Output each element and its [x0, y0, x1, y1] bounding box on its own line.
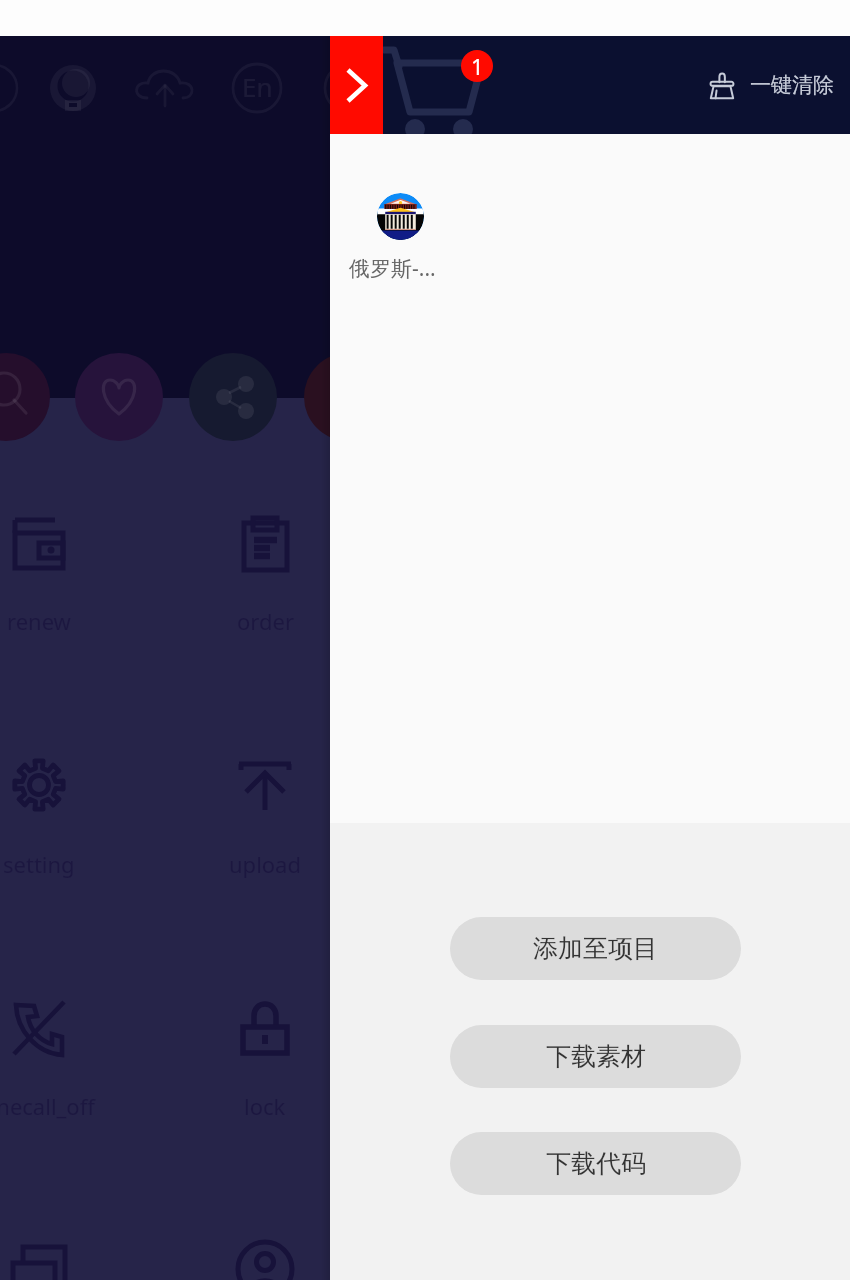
staticText: setting	[3, 849, 75, 879]
staticText: lock	[244, 1091, 286, 1121]
staticText: 俄罗斯-...	[349, 254, 436, 283]
staticText: 1	[471, 51, 484, 81]
staticText: 一键清除	[750, 72, 834, 98]
staticText: upload	[229, 849, 301, 879]
button[interactable]: 添加至项目	[450, 917, 741, 980]
button[interactable]	[377, 193, 424, 240]
staticText: order	[237, 606, 294, 636]
button[interactable]: 一键清除	[709, 71, 834, 99]
staticText: renew	[7, 606, 71, 636]
button[interactable]: 下载代码	[450, 1132, 741, 1195]
button[interactable]: 下载素材	[450, 1025, 741, 1088]
button[interactable]: Back	[330, 36, 383, 134]
staticText: En	[242, 69, 273, 104]
staticText: 下载素材	[546, 1041, 646, 1072]
staticText: 添加至项目	[533, 933, 658, 964]
staticText: 下载代码	[546, 1148, 646, 1179]
staticText: onecall_off	[0, 1091, 95, 1121]
